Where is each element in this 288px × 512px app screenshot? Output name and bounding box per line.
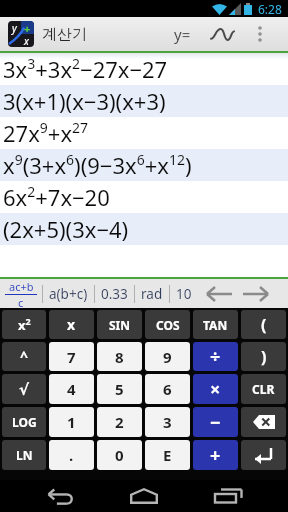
button[interactable]: CLR <box>241 374 286 404</box>
button[interactable]: 0.33 <box>100 285 129 303</box>
button[interactable]: 1 <box>49 407 94 437</box>
staticText: TAN <box>203 317 228 333</box>
staticText: E <box>163 445 172 465</box>
staticText: y <box>12 21 17 35</box>
staticText: 7 <box>67 347 76 367</box>
staticText: 1 <box>67 412 76 432</box>
button[interactable]: 3(x+1)(x−3)(x+3) <box>0 85 288 117</box>
button[interactable]: 8 <box>97 342 142 371</box>
button[interactable] <box>241 407 286 437</box>
staticText: 3x3+3x2−27x−27 <box>3 54 168 84</box>
button[interactable] <box>241 440 286 470</box>
button[interactable]: TAN <box>193 310 238 339</box>
button[interactable]: x2 <box>2 310 46 339</box>
button[interactable] <box>193 480 263 512</box>
button[interactable]: ^ <box>2 342 46 371</box>
button[interactable]: + <box>193 440 238 470</box>
staticText: y= <box>174 24 191 44</box>
staticText: 3 <box>163 412 172 432</box>
button[interactable]: 7 <box>49 342 94 371</box>
staticText: SIN <box>109 317 131 333</box>
button[interactable]: COS <box>145 310 190 339</box>
button[interactable]: (2x+5)(3x−4) <box>0 213 288 245</box>
staticText: 8 <box>115 347 124 367</box>
staticText: x <box>24 34 29 47</box>
button[interactable]: . <box>49 440 94 470</box>
button[interactable]: 6 <box>145 374 190 404</box>
staticText: ( <box>261 314 267 336</box>
staticText: 10 <box>176 285 192 303</box>
staticText: c <box>18 295 24 308</box>
staticText: ac+b <box>9 279 34 294</box>
staticText: × <box>210 377 221 402</box>
button[interactable] <box>202 17 242 51</box>
staticText: 6 <box>163 379 172 399</box>
button[interactable]: 2 <box>97 407 142 437</box>
button[interactable]: 10 <box>175 285 193 303</box>
button[interactable] <box>241 282 269 306</box>
staticText: COS <box>156 317 180 333</box>
button[interactable] <box>109 480 179 512</box>
button[interactable]: ) <box>241 342 286 371</box>
button[interactable]: x <box>49 310 94 339</box>
staticText: 0 <box>115 445 124 465</box>
button[interactable] <box>242 17 278 51</box>
button[interactable]: 5 <box>97 374 142 404</box>
staticText: 27x9+x27 <box>3 118 89 148</box>
staticText: 5 <box>115 379 124 399</box>
button[interactable]: 27x9+x27 <box>0 117 288 149</box>
staticText: 6x2+7x−20 <box>3 182 110 212</box>
button[interactable]: √ <box>2 374 46 404</box>
staticText: 4 <box>67 379 76 399</box>
button[interactable]: rad <box>140 285 164 303</box>
button[interactable]: LN <box>2 440 46 470</box>
staticText: ^ <box>20 347 29 366</box>
button[interactable]: × <box>193 374 238 404</box>
staticText: 2 <box>115 412 124 432</box>
staticText: x2 <box>18 315 31 334</box>
button[interactable] <box>25 480 95 512</box>
button[interactable]: − <box>193 407 238 437</box>
button[interactable]: ÷ <box>193 342 238 371</box>
staticText: 3(x+1)(x−3)(x+3) <box>3 86 166 116</box>
staticText: x <box>67 315 76 334</box>
button[interactable]: 4 <box>49 374 94 404</box>
staticText: + <box>210 443 221 468</box>
button[interactable]: SIN <box>97 310 142 339</box>
button[interactable]: LOG <box>2 407 46 437</box>
staticText: − <box>210 410 221 435</box>
staticText: a(b+c) <box>49 285 88 303</box>
button[interactable]: 6x2+7x−20 <box>0 181 288 213</box>
staticText: CLR <box>252 381 275 397</box>
staticText: 계산기 <box>42 25 87 44</box>
button[interactable]: 9 <box>145 342 190 371</box>
staticText: (2x+5)(3x−4) <box>3 214 129 244</box>
button[interactable]: y= <box>162 17 202 51</box>
button[interactable]: ( <box>241 310 286 339</box>
staticText: rad <box>141 285 163 303</box>
staticText: 9 <box>163 347 172 367</box>
button[interactable]: ac+b <box>5 279 37 308</box>
button[interactable]: 3x3+3x2−27x−27 <box>0 53 288 85</box>
staticText: LN <box>16 447 33 463</box>
button[interactable]: E <box>145 440 190 470</box>
button[interactable]: x9(3+x6)(9−3x6+x12) <box>0 149 288 181</box>
staticText: √ <box>19 381 30 398</box>
staticText: 6:28 <box>258 1 282 17</box>
button[interactable]: a(b+c) <box>48 285 89 303</box>
staticText: ÷ <box>210 344 221 369</box>
button[interactable] <box>205 282 233 306</box>
staticText: LOG <box>12 414 37 430</box>
button[interactable]: 3 <box>145 407 190 437</box>
staticText: x9(3+x6)(9−3x6+x12) <box>3 150 192 180</box>
button[interactable]: 0 <box>97 440 142 470</box>
staticText: ) <box>261 346 267 368</box>
staticText: . <box>69 445 74 465</box>
staticText: 0.33 <box>101 285 128 303</box>
staticText: + <box>24 21 31 36</box>
